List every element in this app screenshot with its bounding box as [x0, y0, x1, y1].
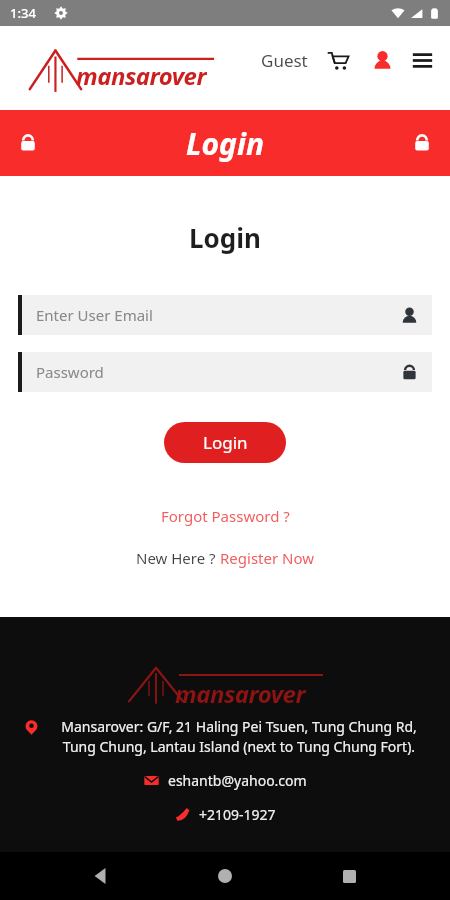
- button[interactable]: Register Now: [220, 548, 315, 568]
- staticText: +2109-1927: [199, 805, 276, 824]
- staticText: Login: [189, 220, 261, 255]
- staticText: Mansarover: G/F, 21 Haling Pei Tsuen, Tu…: [46, 717, 432, 757]
- button[interactable]: Mansarover: G/F, 21 Haling Pei Tsuen, Tu…: [18, 717, 432, 757]
- staticText: eshantb@yahoo.com: [168, 771, 307, 790]
- button[interactable]: mansarover: [26, 45, 216, 91]
- staticText: Register Now: [220, 548, 315, 568]
- button[interactable]: Menu: [406, 44, 438, 76]
- button[interactable]: Login: [164, 422, 286, 463]
- button[interactable]: Recent apps: [326, 853, 372, 899]
- button[interactable]: +2109-1927: [169, 803, 282, 826]
- staticText: New Here ?: [136, 548, 220, 568]
- staticText: Login: [203, 431, 248, 454]
- button[interactable]: eshantb@yahoo.com: [138, 769, 313, 792]
- staticText: Password: [36, 362, 104, 382]
- staticText: 1:34: [10, 4, 36, 22]
- button[interactable]: Forgot Password ?: [153, 503, 298, 529]
- staticText: Guest: [261, 49, 308, 72]
- button[interactable]: Cart: [322, 44, 354, 76]
- button[interactable]: Enter User Email: [18, 295, 432, 335]
- staticText: mansarover: [175, 677, 306, 703]
- button[interactable]: Home: [202, 853, 248, 899]
- staticText: Login: [186, 123, 265, 164]
- button[interactable]: Password: [18, 352, 432, 392]
- button[interactable]: Account: [366, 44, 398, 76]
- button[interactable]: Back: [78, 853, 124, 899]
- staticText: Enter User Email: [36, 305, 153, 325]
- staticText: Forgot Password ?: [161, 506, 290, 526]
- button[interactable]: Guest: [259, 49, 310, 72]
- button[interactable]: mansarover: [125, 663, 325, 703]
- staticText: mansarover: [76, 59, 207, 91]
